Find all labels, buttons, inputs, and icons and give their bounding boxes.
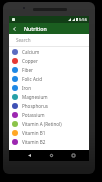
button[interactable]: Back [24, 150, 34, 161]
staticText: Vitamin A (Retinol) [22, 121, 62, 127]
staticText: Search [16, 37, 31, 43]
button[interactable]: Vitamin B2 [9, 137, 89, 146]
staticText: Nutrition [24, 25, 47, 32]
staticText: Magnesium [22, 94, 48, 100]
button[interactable]: Phosphorus [9, 101, 89, 110]
button[interactable]: Calcium [9, 47, 89, 56]
staticText: Phosphorus [22, 103, 48, 109]
button[interactable]: Recent apps [68, 150, 78, 161]
button[interactable]: Navigate up [9, 23, 19, 34]
button[interactable]: Vitamin A (Retinol) [9, 119, 89, 128]
button[interactable]: Vitamin B1 [9, 128, 89, 137]
staticText: Calcium [22, 49, 40, 55]
staticText: Copper [22, 58, 38, 64]
staticText: Potassium [22, 112, 45, 118]
staticText: Vitamin B2 [22, 139, 46, 145]
staticText: Fiber [22, 67, 33, 73]
button[interactable]: Fiber [9, 65, 89, 74]
staticText: Iron [22, 85, 31, 91]
button[interactable]: Folic Acid [9, 74, 89, 83]
button[interactable]: Magnesium [9, 92, 89, 101]
staticText: 5:56 [79, 17, 87, 22]
button[interactable]: Search [9, 34, 89, 47]
button[interactable]: Copper [9, 56, 89, 65]
staticText: Vitamin B1 [22, 130, 46, 136]
staticText: Folic Acid [22, 76, 43, 82]
button[interactable]: Home [46, 150, 56, 161]
button[interactable]: Potassium [9, 110, 89, 119]
button[interactable]: Iron [9, 83, 89, 92]
